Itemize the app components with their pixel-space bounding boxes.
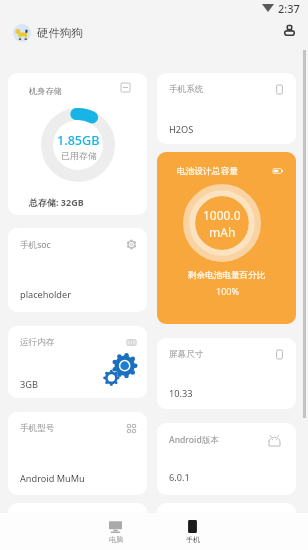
- button[interactable]: 手机soc: [8, 228, 147, 312]
- staticText: 100%: [216, 285, 239, 297]
- button[interactable]: Account: [278, 20, 300, 42]
- button[interactable]: 电脑: [77, 513, 154, 550]
- staticText: H2OS: [169, 123, 194, 136]
- staticText: 3GB: [20, 378, 38, 391]
- button[interactable]: 电池设计总容量: [157, 152, 296, 324]
- staticText: 手机系统: [169, 84, 204, 95]
- staticText: 1.85GB: [57, 132, 100, 149]
- button[interactable]: [157, 503, 296, 543]
- button[interactable]: 屏幕尺寸: [157, 338, 296, 409]
- staticText: 剩余电池电量百分比: [188, 270, 266, 281]
- staticText: 手机型号: [20, 423, 55, 434]
- button[interactable]: 机身存储: [8, 73, 147, 215]
- staticText: 硬件狗狗: [37, 26, 83, 40]
- staticText: mAh: [209, 224, 236, 240]
- staticText: 运行内存: [20, 337, 55, 348]
- staticText: 机身存储: [29, 86, 62, 96]
- button[interactable]: 手机系统: [157, 73, 296, 144]
- staticText: 电池设计总容量: [177, 166, 238, 177]
- staticText: 屏幕尺寸: [169, 349, 204, 360]
- staticText: 1000.0: [203, 207, 241, 223]
- button[interactable]: 手机: [154, 513, 231, 550]
- staticText: 已用存储: [61, 150, 97, 161]
- staticText: Android MuMu: [20, 472, 85, 485]
- staticText: 手机soc: [20, 239, 51, 251]
- staticText: 2:37: [278, 1, 300, 16]
- button[interactable]: Android版本: [157, 423, 296, 495]
- staticText: 电脑: [109, 535, 123, 544]
- staticText: Android版本: [169, 434, 219, 446]
- staticText: 总存储: 32GB: [29, 196, 84, 208]
- button[interactable]: 手机型号: [8, 412, 147, 495]
- staticText: 10.33: [169, 387, 193, 400]
- button[interactable]: 运行内存: [8, 326, 147, 398]
- staticText: placeholder: [20, 288, 71, 301]
- button[interactable]: [8, 503, 147, 543]
- staticText: 手机: [186, 535, 200, 544]
- staticText: 6.0.1: [169, 471, 190, 484]
